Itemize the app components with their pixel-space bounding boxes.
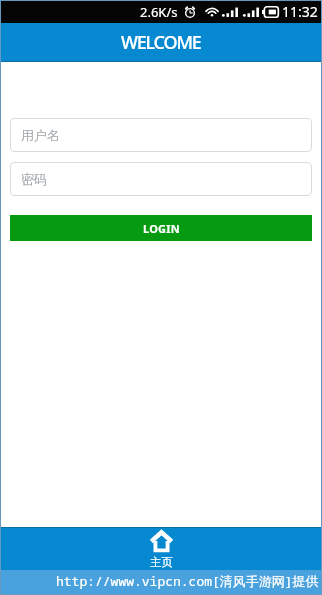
staticText: 用户名 (21, 127, 60, 143)
other: 主页 (149, 529, 174, 554)
button[interactable]: 主页 (127, 529, 196, 569)
button[interactable]: LOGIN (10, 215, 312, 241)
staticText: 主页 (150, 555, 173, 569)
staticText: 密码 (21, 171, 47, 187)
button[interactable]: WELCOME (0, 23, 322, 62)
button[interactable]: 密码 (10, 162, 312, 196)
staticText: 11:32 (282, 2, 318, 21)
staticText: 2.6K/s (140, 3, 178, 21)
staticText: LOGIN (143, 221, 180, 236)
staticText: http://www.vipcn.com[清风手游网]提供 (56, 572, 319, 590)
staticText: WELCOME (121, 30, 201, 55)
button[interactable]: 用户名 (10, 118, 312, 152)
